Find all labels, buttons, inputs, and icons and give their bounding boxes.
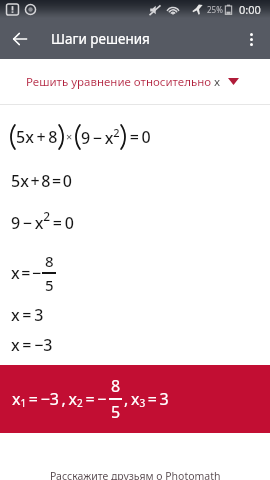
staticText: x = −3	[11, 334, 53, 356]
staticText: 5x + 8 = 0	[11, 170, 72, 192]
staticText: 0:00	[239, 2, 261, 17]
staticText: Решить уравнение относительно x	[26, 74, 221, 90]
staticText: x = 3	[11, 304, 44, 326]
staticText: 5x + 8	[16, 126, 58, 148]
button[interactable]: Назад	[3, 22, 37, 56]
staticText: 5	[45, 275, 54, 295]
staticText: 8	[111, 375, 121, 397]
button[interactable]: Ещё	[234, 22, 268, 56]
button[interactable]: Решить уравнение относительно x	[0, 59, 270, 104]
button[interactable]: Расскажите друзьям о Photomath	[50, 469, 221, 480]
staticText: 5	[111, 401, 121, 423]
staticText: 8	[45, 251, 54, 271]
staticText: , x3 = 3	[124, 388, 169, 410]
staticText: 9 − x2	[81, 125, 120, 148]
staticText: = 0	[127, 126, 151, 148]
staticText: Шаги решения	[51, 30, 150, 48]
staticText: x1 = −3 , x2 = −	[12, 388, 107, 410]
staticText: 25%	[207, 4, 223, 15]
staticText: x = −	[11, 262, 42, 284]
staticText: 9 − x2 = 0	[11, 208, 74, 233]
staticText: ×	[66, 129, 73, 144]
